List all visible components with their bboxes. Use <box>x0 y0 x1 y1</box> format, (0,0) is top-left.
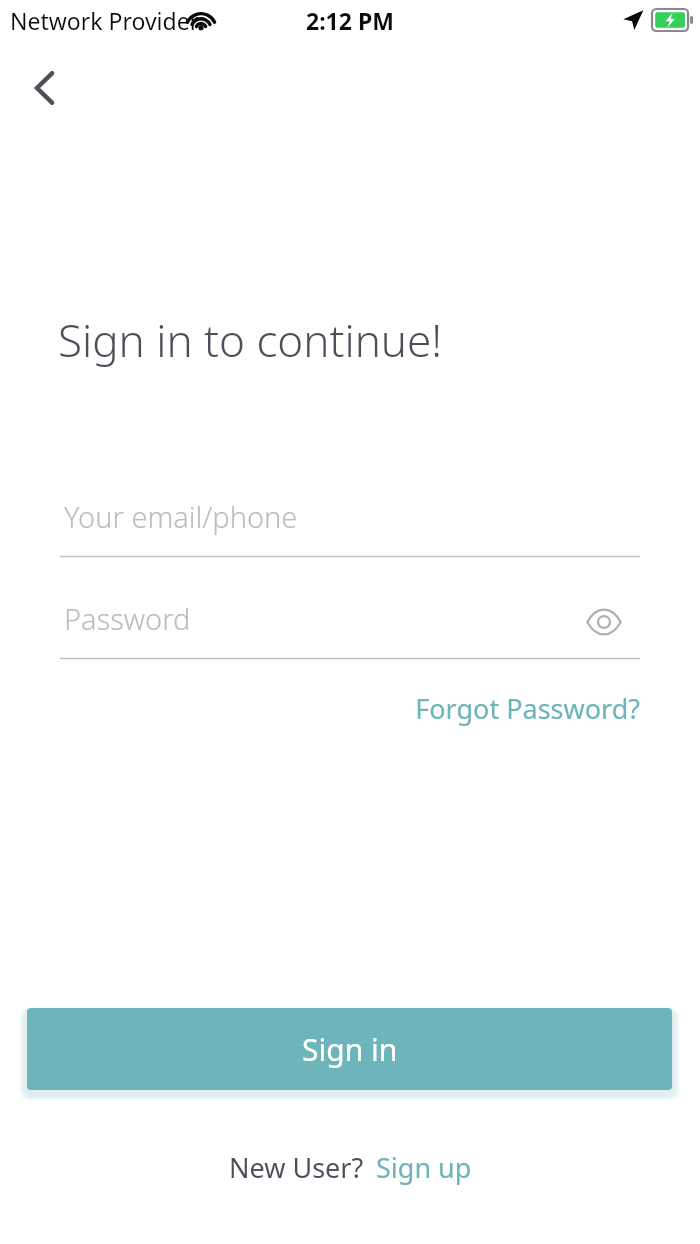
staticText: 2:12 PM <box>306 5 394 36</box>
button[interactable]: Your email/phone <box>60 489 640 560</box>
staticText: Sign in <box>302 1029 398 1070</box>
staticText: Sign up <box>376 1149 472 1186</box>
staticText: Password <box>64 599 191 638</box>
staticText: Network Provider <box>10 5 200 36</box>
staticText: Forgot Password? <box>415 690 640 727</box>
button[interactable]: Sign in <box>27 1008 672 1090</box>
button[interactable]: Back <box>14 57 76 119</box>
staticText: Your email/phone <box>64 497 298 536</box>
button[interactable]: Sign up <box>376 1149 472 1186</box>
button[interactable]: Forgot Password? <box>380 686 640 730</box>
button[interactable]: Show password <box>576 594 632 650</box>
staticText: Sign in to continue! <box>58 310 443 370</box>
button[interactable]: Password <box>60 591 640 662</box>
staticText: New User? <box>229 1149 364 1186</box>
